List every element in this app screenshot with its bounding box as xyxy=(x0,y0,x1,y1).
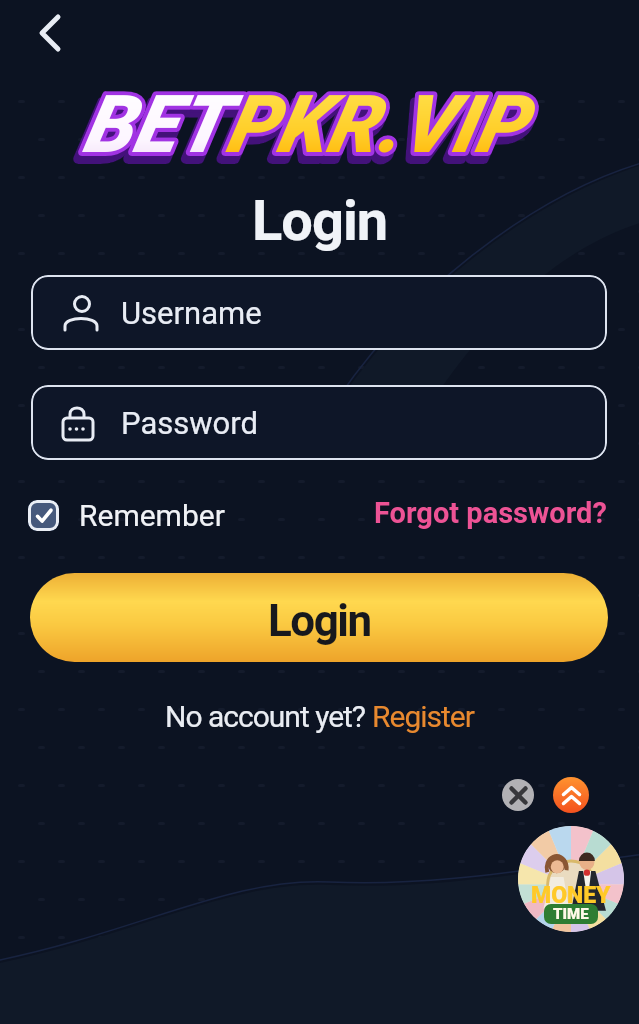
staticText: Login xyxy=(252,188,388,254)
staticText: No account yet? xyxy=(165,699,372,734)
button[interactable]: MONEY xyxy=(518,826,624,932)
button[interactable] xyxy=(29,13,69,53)
button[interactable]: Username xyxy=(31,275,607,350)
button[interactable] xyxy=(553,777,589,813)
staticText: BETPKR.VIP xyxy=(78,85,521,179)
button[interactable]: Forgot password? xyxy=(374,496,607,530)
staticText: Login xyxy=(268,595,371,647)
staticText: Remember xyxy=(79,498,225,533)
staticText: Register xyxy=(372,699,474,734)
staticText: Username xyxy=(121,295,262,331)
staticText: BETPKR.VIP xyxy=(82,78,525,172)
button[interactable]: No account yet? xyxy=(165,699,474,734)
staticText: BETPKR.VIP xyxy=(78,85,521,179)
staticText: TIME xyxy=(553,905,589,923)
staticText: Password xyxy=(121,405,258,441)
staticText: MONEY xyxy=(531,882,611,909)
staticText: Forgot password? xyxy=(374,496,607,530)
button[interactable] xyxy=(502,779,534,811)
button[interactable]: Password xyxy=(31,385,607,460)
button[interactable]: Remember xyxy=(28,498,225,533)
staticText: BETPKR.VIP xyxy=(82,78,525,172)
button[interactable]: Login xyxy=(30,573,608,662)
